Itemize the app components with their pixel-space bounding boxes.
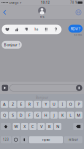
button[interactable]: X (21, 123, 28, 130)
staticText: K (61, 112, 63, 118)
staticText: ha (34, 28, 38, 31)
staticText: C (31, 124, 34, 129)
button[interactable]: Haha (32, 25, 41, 34)
staticText: Y (45, 102, 47, 107)
staticText: Z (12, 102, 14, 107)
staticText: O (69, 102, 72, 107)
staticText: 10:12 (41, 1, 50, 4)
staticText: retour (69, 138, 78, 141)
button[interactable]: Z (9, 101, 16, 108)
button[interactable]: N (54, 123, 61, 130)
staticText: D (19, 112, 22, 118)
button[interactable]: A (1, 101, 8, 108)
button[interactable]: D (17, 112, 25, 119)
button[interactable]: K (59, 112, 66, 119)
button[interactable]: O (67, 101, 74, 108)
button[interactable]: S (9, 112, 16, 119)
button[interactable]: J (50, 112, 58, 119)
button[interactable]: Emoji (12, 136, 20, 143)
staticText: 123 (3, 138, 9, 141)
button[interactable]: Back (0, 5, 9, 19)
staticText: U (52, 102, 55, 107)
button[interactable]: L (67, 112, 74, 119)
button[interactable]: Question (51, 25, 61, 34)
staticText: P (78, 102, 80, 107)
button[interactable]: W (13, 123, 20, 130)
staticText: H (44, 112, 47, 118)
staticText: Remis (74, 33, 82, 37)
staticText: Bonjour (36, 96, 48, 99)
button[interactable]: Q (1, 112, 8, 119)
button[interactable]: R (26, 101, 33, 108)
staticText: T (36, 102, 38, 107)
button[interactable]: Delete (73, 123, 83, 130)
button[interactable]: Emphasize (41, 25, 51, 34)
staticText: S (12, 112, 14, 118)
button[interactable]: B (46, 123, 53, 130)
button[interactable]: M (75, 112, 82, 119)
button[interactable]: Like (12, 25, 22, 34)
staticText: RDV ? (70, 26, 80, 31)
button[interactable]: Apps (2, 85, 8, 91)
button[interactable]: Test (30, 6, 54, 18)
button[interactable]: Record audio (76, 85, 82, 91)
button[interactable]: Dictation (21, 136, 28, 143)
button[interactable]: V (37, 123, 45, 130)
button[interactable]: P (75, 101, 82, 108)
button[interactable]: U (50, 101, 58, 108)
button[interactable]: T (34, 101, 41, 108)
staticText: V (40, 124, 42, 129)
staticText: Test (39, 15, 44, 18)
button[interactable]: Love (2, 25, 12, 34)
staticText: L (69, 112, 71, 118)
staticText: M (77, 112, 81, 118)
staticText: X (24, 124, 26, 129)
staticText: W (14, 124, 18, 129)
staticText: 78 % (70, 1, 77, 4)
button[interactable]: E (17, 101, 25, 108)
staticText: R (28, 102, 30, 107)
button[interactable]: F (26, 112, 33, 119)
staticText: A (3, 102, 6, 107)
staticText: F (28, 112, 30, 118)
staticText: N (56, 124, 59, 129)
button[interactable]: Y (42, 101, 49, 108)
button[interactable]: Return (64, 136, 82, 143)
button[interactable]: H (42, 112, 49, 119)
staticText: E (20, 102, 22, 107)
button[interactable]: I (59, 101, 66, 108)
button[interactable]: Space (29, 136, 63, 143)
staticText: espace (41, 138, 50, 141)
button[interactable]: Dislike (22, 25, 32, 34)
staticText: B (48, 124, 51, 129)
staticText: Q (3, 112, 6, 118)
button[interactable]: Numbers (1, 136, 11, 143)
button[interactable]: Details (73, 5, 84, 19)
staticText: Bonjour ! (4, 42, 20, 47)
staticText: Orange F (8, 1, 21, 4)
button[interactable]: G (34, 112, 41, 119)
button[interactable]: C (29, 123, 36, 130)
staticText: G (36, 112, 39, 118)
button[interactable]: Shift (1, 123, 11, 130)
staticText: I (62, 102, 63, 107)
